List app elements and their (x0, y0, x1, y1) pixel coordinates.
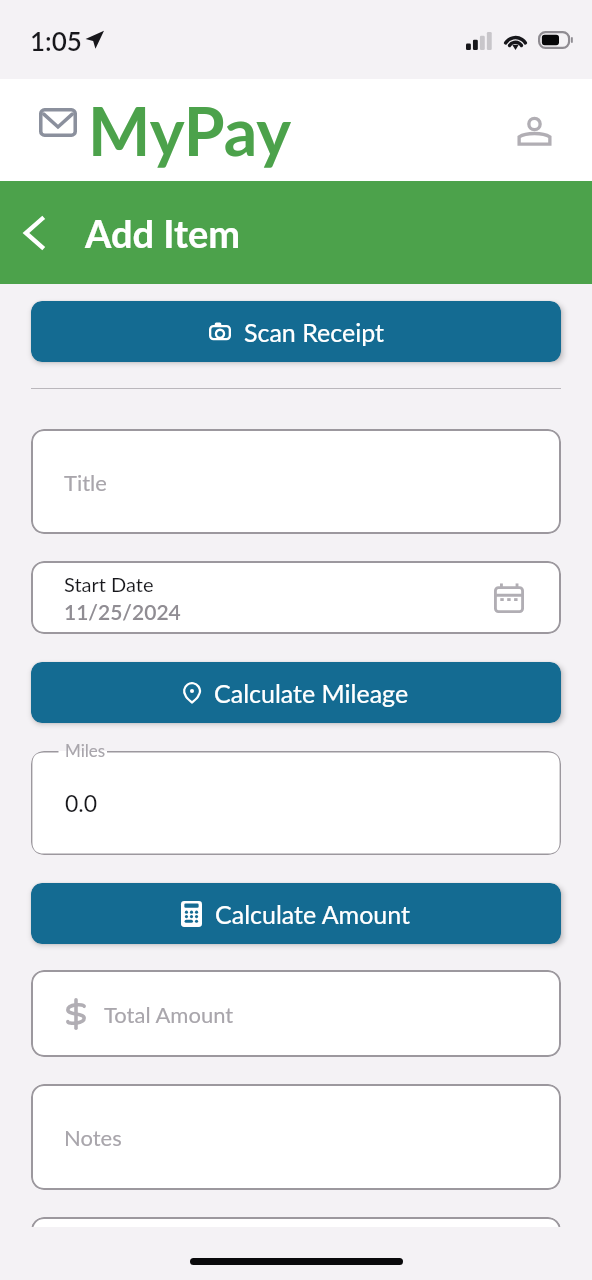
staticText: 11/25/2024 (64, 599, 181, 624)
button[interactable]: 0.0 (31, 751, 561, 855)
staticText: MyPay (88, 91, 292, 170)
button[interactable]: Scan Receipt (31, 301, 561, 362)
button[interactable]: Notes (31, 1084, 561, 1190)
button[interactable]: Total Amount (31, 970, 561, 1057)
button[interactable]: Pick date (494, 583, 524, 613)
button[interactable]: Title (31, 429, 561, 534)
button[interactable]: Calculate Amount (31, 883, 561, 944)
staticText: 0.0 (65, 789, 98, 817)
staticText: Add Item (85, 210, 241, 256)
staticText: Title (64, 469, 107, 495)
button[interactable]: Calculate Mileage (31, 662, 561, 723)
staticText: 1:05 (30, 25, 82, 56)
button[interactable]: Start Date (31, 561, 561, 634)
button[interactable] (31, 1217, 561, 1227)
staticText: Miles (65, 740, 106, 760)
staticText: Total Amount (104, 1001, 234, 1027)
staticText: Calculate Amount (215, 899, 411, 929)
staticText: Start Date (64, 572, 154, 596)
staticText: Scan Receipt (244, 317, 384, 347)
staticText: Calculate Mileage (214, 678, 409, 708)
staticText: Notes (64, 1124, 122, 1150)
button[interactable]: Back (6, 205, 62, 261)
button[interactable]: Account (520, 116, 549, 145)
